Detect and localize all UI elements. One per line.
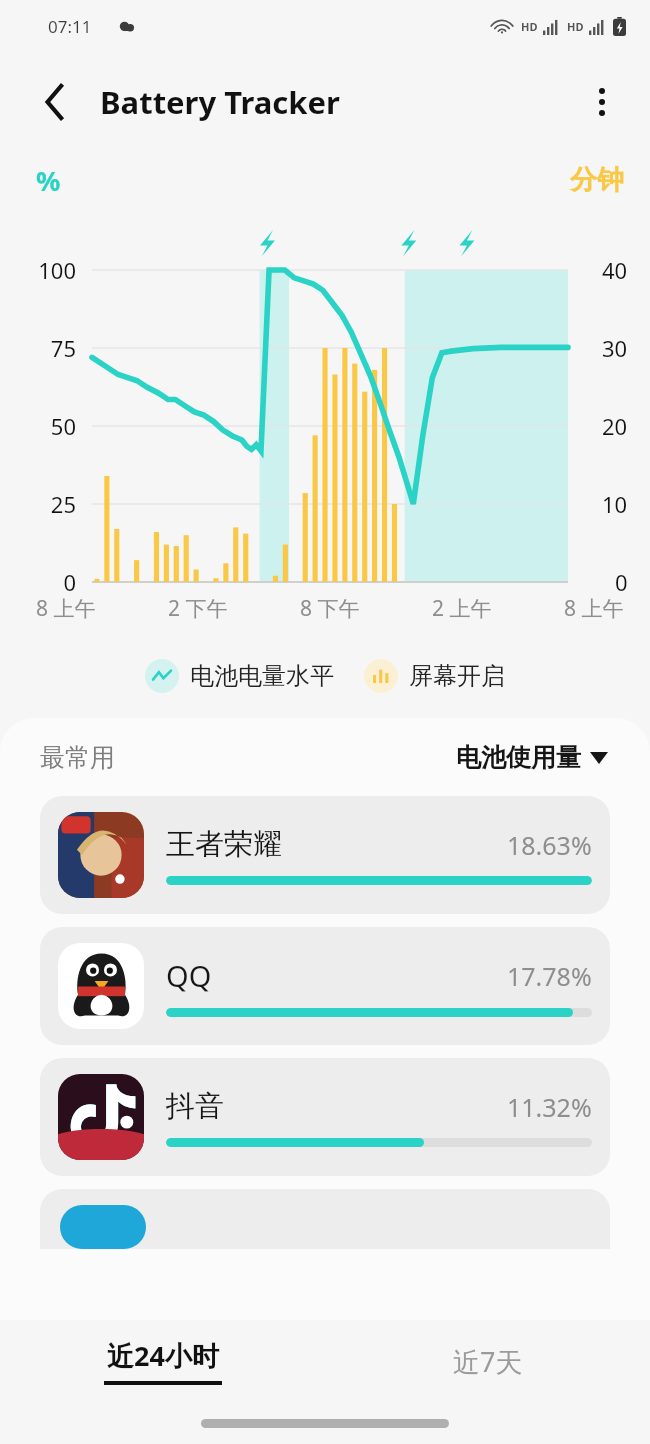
button[interactable]: 近24小时 xyxy=(0,1320,325,1402)
staticText: 分钟 xyxy=(570,163,624,197)
staticText: 30 xyxy=(602,333,628,363)
staticText: 2 下午 xyxy=(168,594,228,623)
staticText: 抖音 xyxy=(166,1088,224,1125)
staticText: % xyxy=(36,162,61,199)
button[interactable]: Back xyxy=(30,77,80,127)
staticText: HD xyxy=(521,19,538,34)
staticText: 18.63% xyxy=(507,828,592,862)
staticText: 王者荣耀 xyxy=(166,826,282,863)
staticText: 75 xyxy=(0,333,76,363)
staticText: 0 xyxy=(615,567,628,597)
staticText: 电池使用量 xyxy=(456,742,581,773)
button[interactable]: QQ xyxy=(40,927,610,1045)
staticText: 8 上午 xyxy=(36,594,96,623)
button[interactable]: 抖音 xyxy=(40,1058,610,1176)
staticText: 17.78% xyxy=(507,959,592,993)
staticText: 最常用 xyxy=(40,742,115,773)
staticText: QQ xyxy=(166,956,212,995)
button[interactable]: 电池电量水平 xyxy=(141,657,338,695)
button[interactable]: 屏幕开启 xyxy=(360,657,509,695)
staticText: 电池电量水平 xyxy=(190,661,334,691)
button[interactable]: 近7天 xyxy=(325,1320,650,1402)
staticText: 8 下午 xyxy=(300,594,360,623)
staticText: 20 xyxy=(602,411,628,441)
staticText: 10 xyxy=(602,489,628,519)
staticText: 屏幕开启 xyxy=(409,661,505,691)
staticText: Battery Tracker xyxy=(100,81,340,123)
staticText: 近24小时 xyxy=(107,1337,219,1374)
button[interactable] xyxy=(40,1189,610,1249)
staticText: 25 xyxy=(0,489,76,519)
button[interactable]: More options xyxy=(576,76,628,128)
button[interactable]: 电池使用量 xyxy=(454,740,610,775)
staticText: 100 xyxy=(0,255,76,285)
staticText: 近7天 xyxy=(453,1343,523,1380)
staticText: 2 上午 xyxy=(432,594,492,623)
staticText: 50 xyxy=(0,411,76,441)
staticText: 11.32% xyxy=(507,1090,592,1124)
staticText: 0 xyxy=(0,567,76,597)
staticText: 8 上午 xyxy=(564,594,624,623)
staticText: 40 xyxy=(602,255,628,285)
staticText: 07:11 xyxy=(48,15,92,38)
staticText: HD xyxy=(567,19,584,34)
button[interactable]: 王者荣耀 xyxy=(40,796,610,914)
